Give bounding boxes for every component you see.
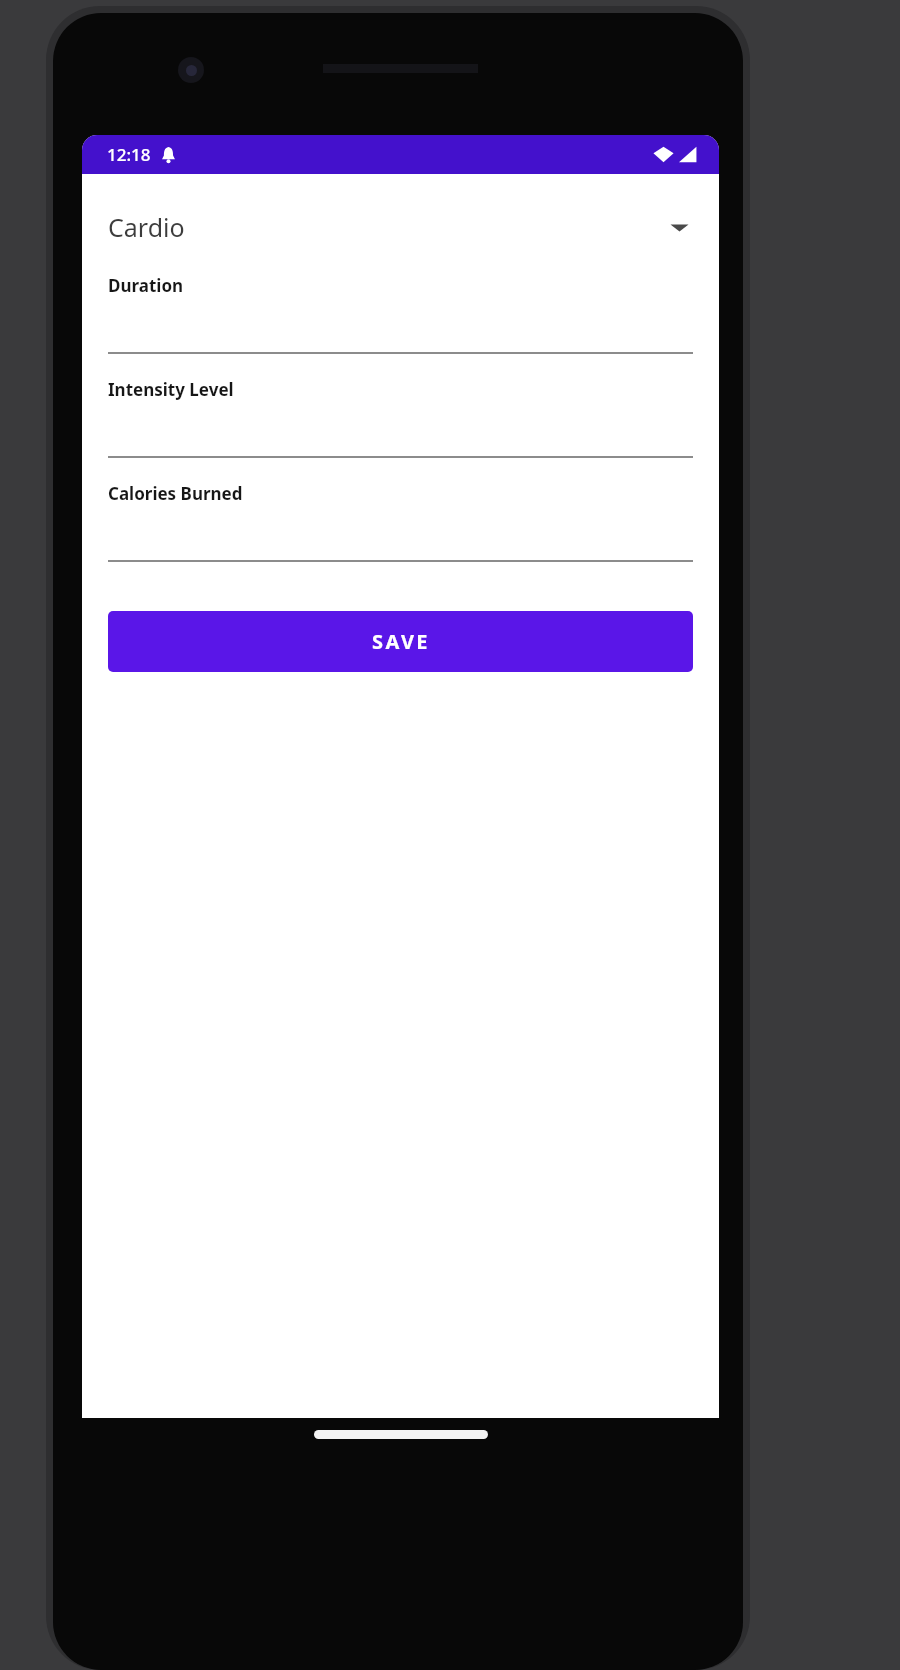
other: Notifications bbox=[160, 146, 177, 164]
button[interactable]: Cardio bbox=[108, 200, 693, 254]
button[interactable]: SAVE bbox=[108, 611, 693, 672]
staticText: 12:18 bbox=[107, 143, 151, 166]
other: Select workout type bbox=[669, 220, 690, 234]
staticText: Cardio bbox=[108, 210, 185, 244]
staticText: Intensity Level bbox=[108, 378, 234, 401]
other: Wi-Fi bbox=[653, 146, 674, 163]
other: Mobile signal bbox=[678, 146, 697, 163]
staticText: Calories Burned bbox=[108, 482, 243, 505]
staticText: SAVE bbox=[372, 628, 430, 655]
staticText: Duration bbox=[108, 274, 184, 297]
